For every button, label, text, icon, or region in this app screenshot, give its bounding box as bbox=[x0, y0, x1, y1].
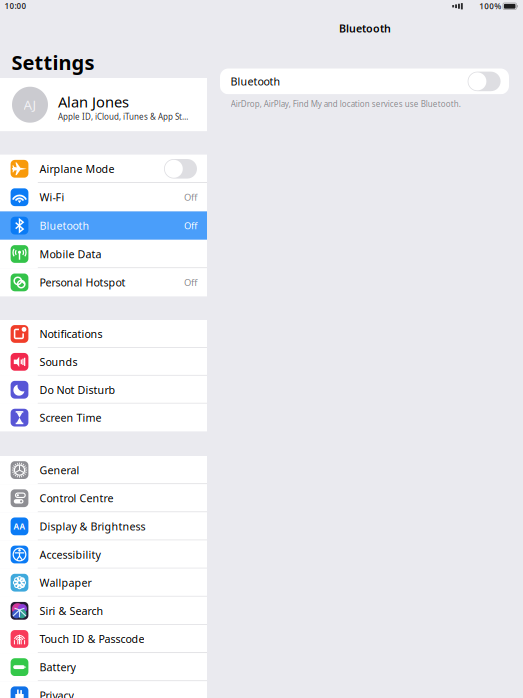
button[interactable]: Personal Hotspot bbox=[0, 268, 207, 297]
button[interactable]: Airplane Mode bbox=[0, 155, 207, 183]
staticText: Personal Hotspot bbox=[39, 275, 125, 289]
staticText: Notifications bbox=[39, 327, 102, 341]
button[interactable]: Notifications bbox=[0, 320, 207, 348]
staticText: Wallpaper bbox=[39, 576, 91, 590]
staticText: Screen Time bbox=[39, 411, 101, 425]
staticText: AirDrop, AirPlay, Find My and location s… bbox=[231, 98, 461, 109]
staticText: Alan Jones bbox=[58, 92, 129, 111]
button[interactable]: General bbox=[0, 456, 207, 484]
button[interactable]: Accessibility bbox=[0, 540, 207, 569]
staticText: Wi-Fi bbox=[39, 190, 64, 204]
button[interactable]: Control Centre bbox=[0, 484, 207, 512]
staticText: Battery bbox=[39, 660, 75, 674]
button[interactable]: Mobile Data bbox=[0, 240, 207, 268]
staticText: Sounds bbox=[39, 355, 77, 369]
staticText: Bluetooth bbox=[39, 218, 89, 233]
staticText: Privacy bbox=[39, 688, 73, 698]
staticText: Mobile Data bbox=[39, 247, 101, 261]
button[interactable]: AA bbox=[0, 512, 207, 540]
staticText: AJ bbox=[23, 96, 36, 113]
staticText: Off bbox=[184, 219, 197, 232]
button[interactable]: Screen Time bbox=[0, 404, 207, 432]
staticText: Siri & Search bbox=[39, 604, 103, 618]
staticText: AA bbox=[13, 521, 25, 532]
button[interactable]: Siri & Search bbox=[0, 597, 207, 625]
button[interactable]: Battery bbox=[0, 653, 207, 681]
staticText: Apple ID, iCloud, iTunes & App St… bbox=[58, 111, 188, 122]
staticText: Off bbox=[184, 191, 197, 203]
staticText: 10:00 bbox=[4, 1, 26, 11]
button[interactable]: AJ bbox=[0, 78, 207, 131]
staticText: Bluetooth bbox=[230, 74, 280, 88]
button[interactable]: Touch ID & Passcode bbox=[0, 625, 207, 653]
button[interactable]: Wi-Fi bbox=[0, 183, 207, 211]
button[interactable]: Sounds bbox=[0, 348, 207, 376]
staticText: Display & Brightness bbox=[39, 519, 145, 533]
staticText: Settings bbox=[11, 49, 94, 75]
staticText: Do Not Disturb bbox=[39, 383, 115, 397]
button[interactable]: Wallpaper bbox=[0, 569, 207, 597]
staticText: General bbox=[39, 463, 79, 477]
staticText: Touch ID & Passcode bbox=[39, 632, 144, 646]
staticText: Airplane Mode bbox=[39, 162, 114, 176]
button[interactable]: Bluetooth bbox=[0, 211, 207, 240]
staticText: Accessibility bbox=[39, 547, 100, 562]
staticText: Control Centre bbox=[39, 491, 113, 505]
staticText: 100% bbox=[479, 1, 501, 11]
button[interactable]: Privacy bbox=[0, 681, 207, 698]
staticText: Bluetooth bbox=[339, 21, 391, 35]
button[interactable]: Do Not Disturb bbox=[0, 376, 207, 404]
staticText: Off bbox=[184, 276, 197, 289]
